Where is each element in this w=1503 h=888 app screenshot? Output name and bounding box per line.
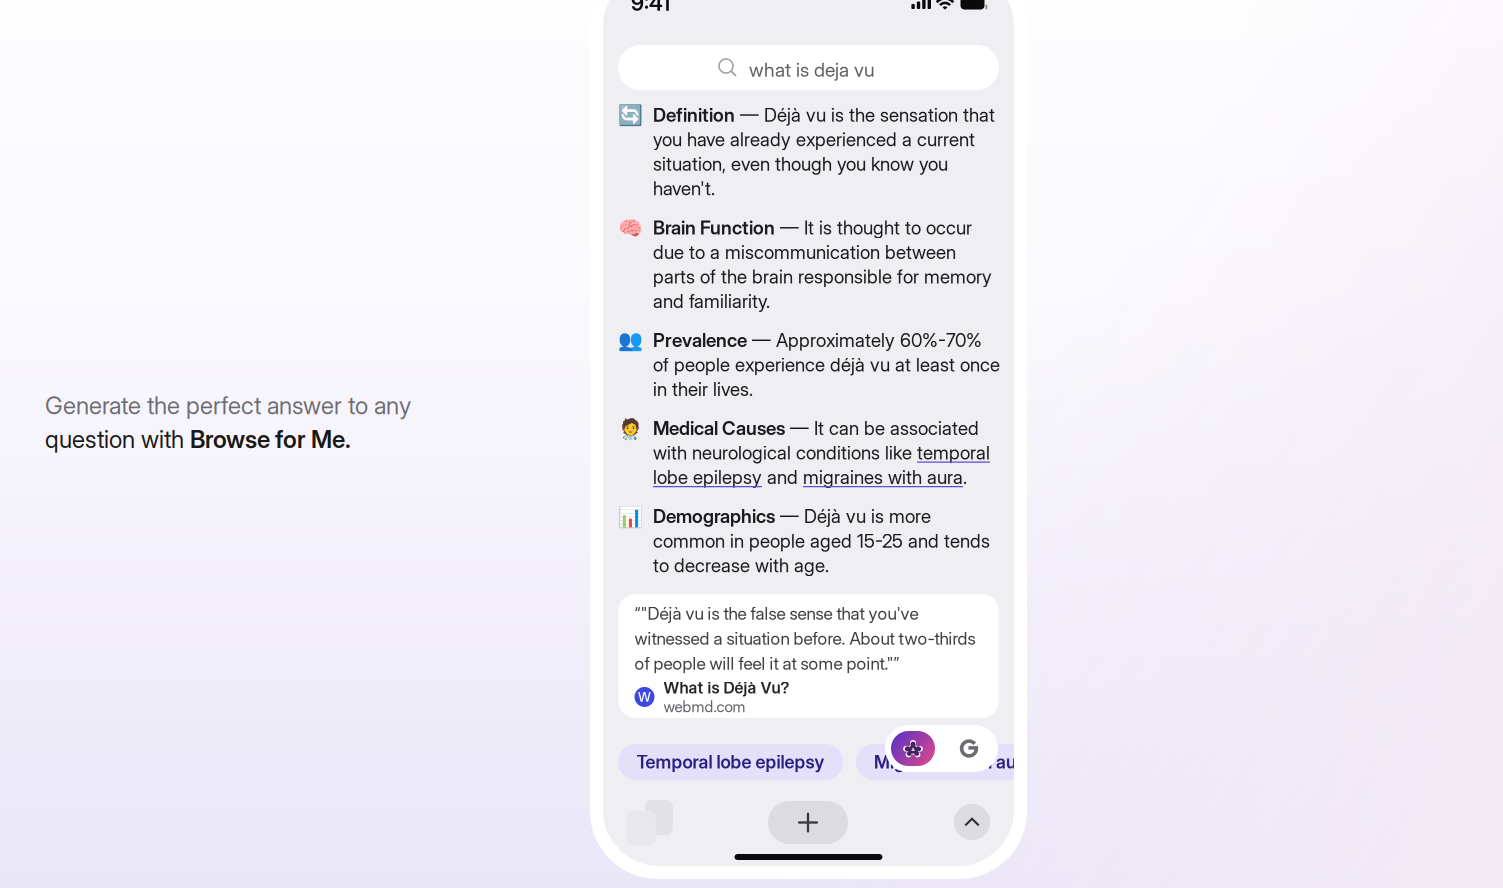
staticText: 👥 bbox=[618, 329, 643, 352]
button[interactable]: Temporal lobe epilepsy bbox=[618, 744, 843, 780]
button[interactable]: “"Déjà vu is the false sense that you've… bbox=[618, 594, 998, 718]
staticText: Prevalence — Approximately 60%-70% of pe… bbox=[653, 329, 1000, 400]
staticText: 🧑‍⚕️ bbox=[618, 417, 643, 440]
staticText: question with Browse for Me. bbox=[45, 425, 351, 453]
button[interactable]: Tabs bbox=[621, 800, 677, 850]
staticText: Generate the perfect answer to any bbox=[45, 391, 411, 420]
staticText: 🧠 bbox=[618, 217, 643, 239]
staticText: webmd.com bbox=[663, 697, 745, 716]
button[interactable]: what is deja vu bbox=[618, 45, 999, 90]
staticText: 9:41 bbox=[631, 0, 670, 16]
staticText: what is deja vu bbox=[749, 58, 875, 81]
staticText: Medical Causes — It can be associated wi… bbox=[653, 417, 990, 488]
staticText: Migraines with aura bbox=[874, 751, 1032, 773]
staticText: W bbox=[638, 689, 651, 705]
staticText: 📊 bbox=[618, 505, 643, 528]
staticText: 🔄 bbox=[618, 104, 643, 127]
staticText: Brain Function — It is thought to occur … bbox=[653, 217, 992, 312]
button[interactable]: Google search bbox=[946, 731, 992, 766]
staticText: Definition — Déjà vu is the sensation th… bbox=[653, 104, 995, 200]
staticText: What is Déjà Vu? bbox=[663, 678, 789, 697]
staticText: Temporal lobe epilepsy bbox=[636, 751, 824, 773]
button[interactable]: Arc search bbox=[891, 731, 935, 766]
staticText: Demographics — Déjà vu is more common in… bbox=[653, 505, 990, 576]
button[interactable]: New tab bbox=[768, 801, 848, 844]
button[interactable]: Show more bbox=[954, 804, 990, 840]
button[interactable]: Migraines with aura bbox=[856, 744, 1050, 780]
staticText: “"Déjà vu is the false sense that you've… bbox=[634, 603, 975, 674]
